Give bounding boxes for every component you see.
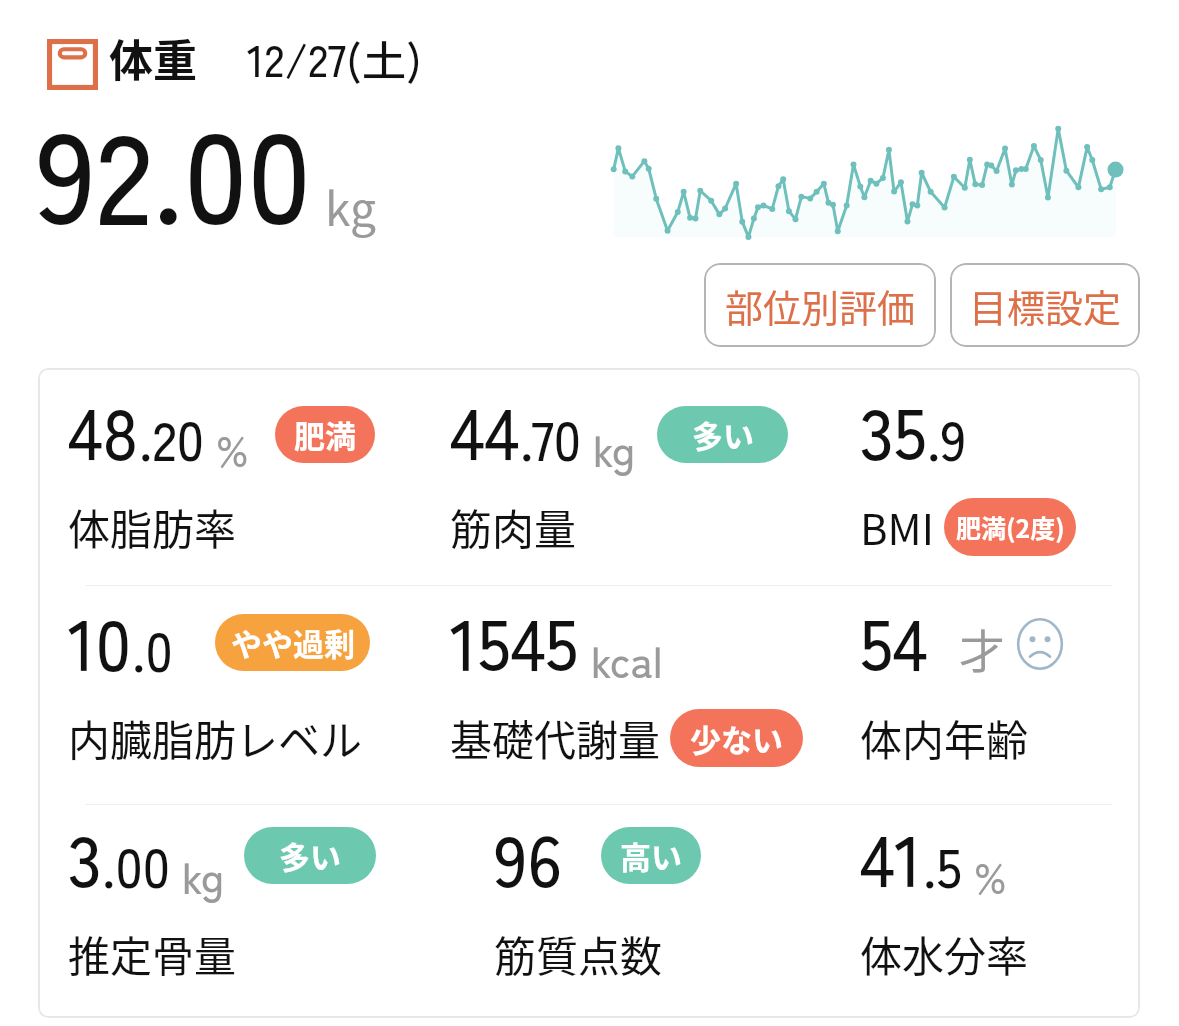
staticText: やや過剰 bbox=[231, 620, 355, 665]
staticText: kg bbox=[325, 173, 376, 240]
staticText: 54 bbox=[860, 590, 928, 691]
staticText: kcal bbox=[591, 629, 663, 690]
staticText: 筋質点数 bbox=[494, 923, 663, 984]
button[interactable]: 41 bbox=[860, 806, 1029, 984]
staticText: 内臓脂肪レベル bbox=[68, 707, 363, 768]
button[interactable]: 35 bbox=[860, 379, 1076, 557]
staticText: 目標設定 bbox=[969, 278, 1122, 333]
staticText: 10 bbox=[68, 590, 132, 691]
staticText: .5 bbox=[923, 825, 962, 903]
staticText: 多い bbox=[692, 412, 754, 457]
staticText: 1545 bbox=[450, 590, 579, 691]
staticText: 35 bbox=[860, 379, 927, 480]
other: 体内年齢の評価 bbox=[1014, 618, 1066, 670]
staticText: 筋肉量 bbox=[450, 496, 577, 557]
staticText: 高い bbox=[620, 833, 682, 878]
staticText: 12/27(土) bbox=[247, 26, 422, 90]
staticText: 少ない bbox=[690, 716, 783, 761]
button[interactable]: 44 bbox=[450, 379, 788, 557]
button[interactable]: 1545 bbox=[450, 590, 803, 768]
staticText: 44 bbox=[450, 379, 520, 480]
button[interactable]: 部位別評価 bbox=[704, 263, 936, 347]
button[interactable]: 目標設定 bbox=[950, 263, 1140, 347]
staticText: 肥満 bbox=[294, 412, 356, 457]
button[interactable]: 54 bbox=[860, 590, 1066, 768]
button[interactable]: 肥満 bbox=[275, 406, 375, 463]
button[interactable]: 3 bbox=[68, 806, 376, 984]
button[interactable]: 48 bbox=[68, 379, 375, 557]
staticText: % bbox=[216, 418, 249, 479]
staticText: 部位別評価 bbox=[725, 278, 916, 333]
button[interactable]: 肥満(2度) bbox=[944, 498, 1076, 556]
staticText: 体内年齢 bbox=[860, 707, 1029, 768]
staticText: 41 bbox=[860, 806, 923, 907]
button[interactable]: 多い bbox=[244, 827, 376, 884]
staticText: 体脂肪率 bbox=[68, 496, 237, 557]
staticText: 推定骨量 bbox=[68, 923, 237, 984]
staticText: .00 bbox=[102, 825, 170, 903]
button[interactable]: 少ない bbox=[670, 709, 803, 767]
staticText: .9 bbox=[927, 398, 967, 476]
staticText: BMI bbox=[860, 496, 935, 557]
staticText: 96 bbox=[494, 806, 563, 907]
staticText: 基礎代謝量 bbox=[450, 707, 661, 768]
button[interactable]: 96 bbox=[494, 806, 701, 984]
staticText: 肥満(2度) bbox=[956, 509, 1065, 545]
staticText: kg bbox=[593, 418, 636, 479]
button[interactable]: やや過剰 bbox=[215, 614, 370, 671]
staticText: .0 bbox=[132, 609, 173, 687]
button[interactable]: 多い bbox=[657, 406, 788, 463]
staticText: .70 bbox=[520, 398, 581, 476]
button[interactable]: 高い bbox=[601, 827, 701, 884]
button[interactable]: 10 bbox=[68, 590, 370, 768]
staticText: 92.00 bbox=[36, 78, 311, 260]
staticText: 48 bbox=[68, 379, 139, 480]
staticText: 体重 bbox=[109, 26, 197, 90]
staticText: kg bbox=[182, 845, 225, 906]
staticText: 3 bbox=[68, 806, 102, 907]
staticText: .20 bbox=[139, 398, 204, 476]
staticText: 多い bbox=[279, 833, 341, 878]
staticText: 才 bbox=[959, 615, 1005, 682]
staticText: 体水分率 bbox=[860, 923, 1029, 984]
other: 体重 bbox=[47, 39, 98, 90]
staticText: % bbox=[974, 845, 1007, 906]
